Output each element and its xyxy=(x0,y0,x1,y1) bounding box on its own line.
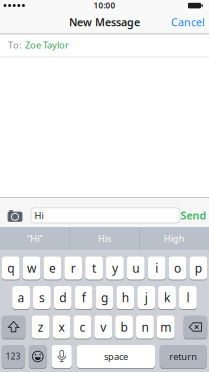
staticText: Cancel xyxy=(171,15,205,29)
staticText: Hi xyxy=(34,209,43,222)
button[interactable]: p xyxy=(0,0,209,372)
staticText: To: xyxy=(8,39,22,51)
button[interactable]: o xyxy=(0,0,209,372)
staticText: o xyxy=(174,260,181,276)
button[interactable]: s xyxy=(0,0,209,372)
button[interactable]: k xyxy=(0,0,209,372)
staticText: j xyxy=(145,289,148,305)
button[interactable]: x xyxy=(0,0,209,372)
staticText: w xyxy=(27,260,36,276)
button[interactable]: c xyxy=(0,0,209,372)
button[interactable]: l xyxy=(0,0,209,372)
button[interactable]: g xyxy=(0,0,209,372)
staticText: p xyxy=(195,260,202,276)
button[interactable]: h xyxy=(0,0,209,372)
button[interactable]: v xyxy=(0,0,209,372)
staticText: z xyxy=(38,319,44,335)
button[interactable]: e xyxy=(0,0,209,372)
staticText: High xyxy=(164,232,185,245)
staticText: His xyxy=(98,232,111,245)
button[interactable]: t xyxy=(0,0,209,372)
staticText: k xyxy=(164,289,170,305)
staticText: m xyxy=(160,319,171,335)
button[interactable]: i xyxy=(0,0,209,372)
button[interactable]: z xyxy=(0,0,209,372)
staticText: a xyxy=(18,289,25,305)
staticText: q xyxy=(7,260,14,276)
staticText: n xyxy=(141,319,148,335)
staticText: e xyxy=(49,260,56,276)
staticText: r xyxy=(71,260,76,276)
button[interactable]: space xyxy=(0,0,209,372)
staticText: f xyxy=(82,289,86,305)
button[interactable]: d xyxy=(0,0,209,372)
staticText: space xyxy=(104,350,128,363)
button[interactable]: b xyxy=(0,0,209,372)
button[interactable]: y xyxy=(0,0,209,372)
staticText: d xyxy=(59,289,66,305)
button[interactable]: Dictate xyxy=(0,0,209,372)
staticText: Send xyxy=(180,208,206,222)
staticText: u xyxy=(132,260,139,276)
button[interactable]: 123 xyxy=(0,0,209,372)
staticText: y xyxy=(112,260,118,276)
button[interactable]: Camera xyxy=(0,0,209,372)
staticText: return xyxy=(169,350,197,363)
staticText: Zoe Taylor xyxy=(25,39,69,51)
button[interactable]: Emoji xyxy=(0,0,209,372)
button[interactable]: r xyxy=(0,0,209,372)
staticText: New Message xyxy=(69,15,140,29)
staticText: l xyxy=(186,289,189,305)
staticText: x xyxy=(58,319,64,335)
staticText: b xyxy=(121,319,128,335)
button[interactable]: w xyxy=(0,0,209,372)
button[interactable]: a xyxy=(0,0,209,372)
button[interactable]: Send xyxy=(0,0,209,372)
button[interactable]: High xyxy=(0,0,209,372)
staticText: t xyxy=(92,260,96,276)
button[interactable]: Message field xyxy=(0,0,209,372)
staticText: s xyxy=(39,289,45,305)
staticText: i xyxy=(155,260,158,276)
button[interactable]: return xyxy=(0,0,209,372)
button[interactable]: f xyxy=(0,0,209,372)
button[interactable]: u xyxy=(0,0,209,372)
button[interactable]: j xyxy=(0,0,209,372)
staticText: g xyxy=(101,289,108,305)
staticText: 10:00 xyxy=(93,0,115,11)
staticText: 123 xyxy=(6,351,21,362)
staticText: c xyxy=(79,319,85,335)
button[interactable]: Cancel xyxy=(0,0,209,372)
staticText: h xyxy=(122,289,129,305)
staticText: “Hi” xyxy=(27,232,42,245)
button[interactable]: Shift xyxy=(0,0,209,372)
staticText: v xyxy=(100,319,106,335)
button[interactable]: n xyxy=(0,0,209,372)
button[interactable]: m xyxy=(0,0,209,372)
button[interactable]: “Hi” xyxy=(0,0,209,372)
button[interactable]: Delete xyxy=(0,0,209,372)
button[interactable]: q xyxy=(0,0,209,372)
button[interactable]: His xyxy=(0,0,209,372)
